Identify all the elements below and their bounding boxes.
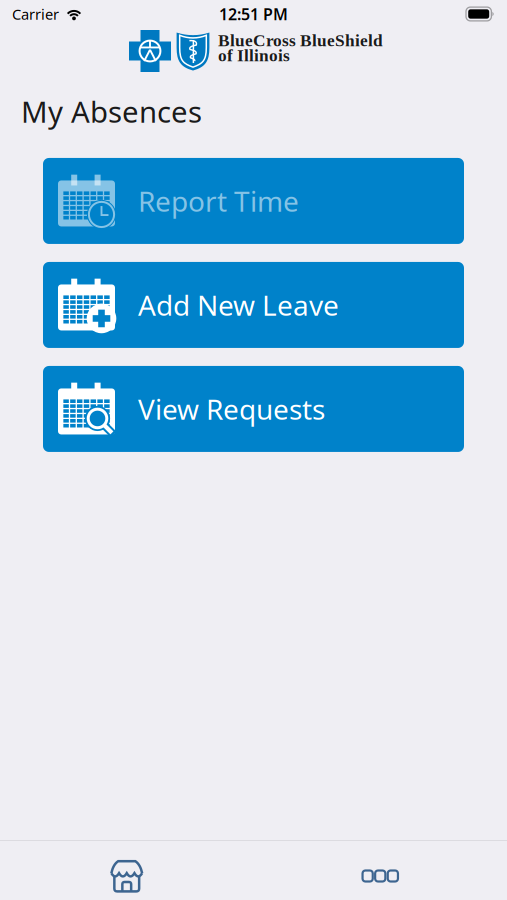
- staticText: of Illinois: [218, 46, 290, 65]
- staticText: Carrier: [12, 4, 59, 24]
- button[interactable]: More: [253, 841, 507, 900]
- staticText: BlueCross BlueShield: [218, 31, 383, 50]
- staticText: Add New Leave: [138, 286, 339, 324]
- button[interactable]: Store: [0, 841, 253, 900]
- staticText: My Absences: [21, 92, 202, 131]
- staticText: Report Time: [138, 182, 299, 220]
- staticText: View Requests: [138, 390, 325, 428]
- button[interactable]: View Requests: [43, 366, 464, 452]
- button[interactable]: Add New Leave: [43, 262, 464, 348]
- staticText: 12:51 PM: [219, 3, 288, 25]
- button[interactable]: Report Time: [43, 158, 464, 244]
